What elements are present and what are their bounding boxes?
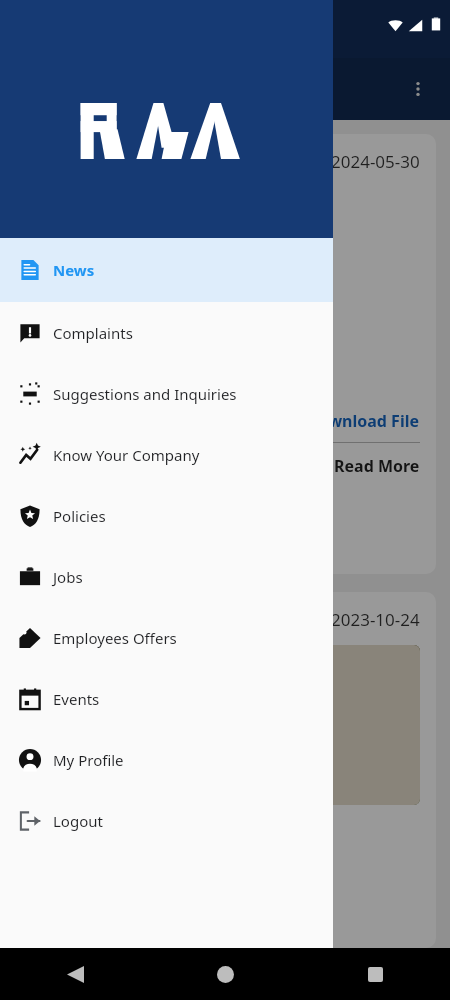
staticText: Complaints — [53, 323, 133, 343]
button[interactable]: Jobs — [0, 546, 333, 607]
button[interactable]: Logout — [0, 790, 333, 851]
button[interactable]: My Profile — [0, 729, 333, 790]
button[interactable]: Complaints — [0, 302, 333, 363]
staticText: Logout — [53, 811, 103, 831]
staticText: 2024-05-30 — [331, 150, 420, 173]
button[interactable]: Recents — [351, 950, 399, 998]
staticText: Policies — [53, 506, 106, 526]
staticText: Suggestions and Inquiries — [53, 384, 237, 404]
button[interactable]: Know Your Company — [0, 424, 333, 485]
button[interactable]: Policies — [0, 485, 333, 546]
staticText: Announcement Title Here — [30, 217, 239, 240]
button[interactable]: 2024-05-30 — [14, 134, 436, 574]
button[interactable]: 2023-10-24 — [14, 592, 436, 948]
button[interactable]: Suggestions and Inquiries — [0, 363, 333, 424]
button[interactable]: Events — [0, 668, 333, 729]
staticText: News — [53, 260, 95, 280]
button[interactable]: News — [0, 238, 333, 302]
staticText: Events — [53, 689, 100, 709]
staticText: Know Your Company — [53, 445, 200, 465]
staticText: My Profile — [53, 750, 124, 770]
staticText: 2023-10-24 — [331, 608, 420, 631]
staticText: Jobs — [53, 567, 83, 587]
button[interactable]: More options — [398, 69, 438, 109]
button[interactable]: Download File — [307, 410, 420, 432]
button[interactable]: Home — [201, 950, 249, 998]
button[interactable]: Employees Offers — [0, 607, 333, 668]
staticText: Employees Offers — [53, 628, 177, 648]
button[interactable]: Read More — [334, 455, 420, 477]
button[interactable]: Back — [51, 950, 99, 998]
